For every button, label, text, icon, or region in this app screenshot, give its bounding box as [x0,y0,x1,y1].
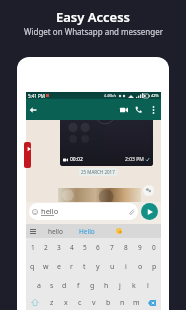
button[interactable]: c [73,295,87,310]
staticText: m [133,298,140,308]
button[interactable]: 4 [65,238,78,257]
staticText: 2:03 PM [125,156,144,163]
button[interactable]: x [59,295,73,310]
staticText: u [110,262,115,272]
button[interactable]: r [65,257,78,276]
staticText: 5:41 PM [28,93,45,99]
button[interactable]: h [99,276,113,295]
button[interactable]: t [78,257,91,276]
button[interactable]: 7 [105,238,119,257]
staticText: p [152,262,157,272]
staticText: 7 [110,243,114,252]
button[interactable]: 5 [78,238,91,257]
button[interactable]: Hello [71,224,103,238]
button[interactable]: a [32,276,45,295]
staticText: h [104,281,109,291]
button[interactable]: d [58,276,71,295]
staticText: d [62,281,67,291]
button[interactable]: w [39,257,52,276]
staticText: 0 [152,243,156,252]
staticText: 3 [57,243,61,252]
button[interactable]: Backspace [143,295,161,310]
staticText: q [30,262,35,272]
staticText: w [43,262,49,272]
staticText: 25 MARCH 2017 [81,169,115,175]
button[interactable]: f [71,276,85,295]
staticText: 4.4Kb/s [104,93,117,98]
button[interactable]: p [147,257,161,276]
staticText: 9 [138,243,142,252]
button[interactable] [103,224,135,238]
staticText: v [92,298,96,308]
button[interactable]: hello [29,203,138,220]
button[interactable]: More options [146,99,160,120]
button[interactable]: 8 [119,238,133,257]
staticText: 4 [70,243,74,252]
button[interactable]: 3 [52,238,65,257]
staticText: r [70,262,73,272]
staticText: 8 [124,243,128,252]
button[interactable]: j [113,276,127,295]
staticText: o [138,262,143,272]
staticText: 42% [151,93,159,98]
button[interactable]: 6 [91,238,105,257]
button[interactable]: u [105,257,119,276]
button[interactable]: n [115,295,129,310]
button[interactable]: m [129,295,143,310]
staticText: l [147,281,149,291]
staticText: e [57,262,61,272]
button[interactable]: 2 [39,238,52,257]
button[interactable]: 1 [26,238,39,257]
button[interactable]: q [26,257,39,276]
staticText: 00:02 [70,156,83,163]
button[interactable]: Video call [116,99,131,120]
staticText: t [83,262,86,272]
staticText: z [50,298,54,308]
button[interactable]: z [44,295,59,310]
staticText: f [77,281,80,291]
button[interactable]: v [87,295,101,310]
staticText: i [125,262,127,272]
staticText: hello [41,206,59,216]
staticText: 5 [83,243,87,252]
button[interactable]: Call [131,99,146,120]
button[interactable]: g [85,276,99,295]
staticText: c [78,298,82,308]
staticText: a [37,281,41,291]
staticText: 1 [31,243,35,252]
button[interactable]: l [141,276,155,295]
button[interactable]: s [45,276,58,295]
staticText: b [106,298,111,308]
staticText: Widget on Whatsapp and messenger [24,26,163,37]
staticText: s [50,281,54,291]
button[interactable]: Shift [26,295,44,310]
staticText: n [120,298,125,308]
button[interactable]: o [133,257,147,276]
button[interactable]: e [52,257,65,276]
staticText: g [90,281,95,291]
button[interactable]: Back [26,99,40,120]
staticText: j [119,281,121,291]
button[interactable]: hello [40,224,71,238]
staticText: Hello [79,227,95,236]
button[interactable]: k [127,276,141,295]
staticText: hello [48,227,63,236]
staticText: y [96,262,100,272]
staticText: x [64,298,68,308]
button[interactable]: Send [141,203,158,220]
button[interactable]: Keyboard menu [26,224,40,238]
button[interactable]: 0 [147,238,161,257]
button[interactable]: i [119,257,133,276]
button[interactable]: y [91,257,105,276]
staticText: Easy Access [56,8,130,26]
button[interactable]: b [101,295,115,310]
button[interactable]: 9 [133,238,147,257]
staticText: 6 [96,243,100,252]
staticText: 2 [44,243,48,252]
staticText: k [132,281,136,291]
